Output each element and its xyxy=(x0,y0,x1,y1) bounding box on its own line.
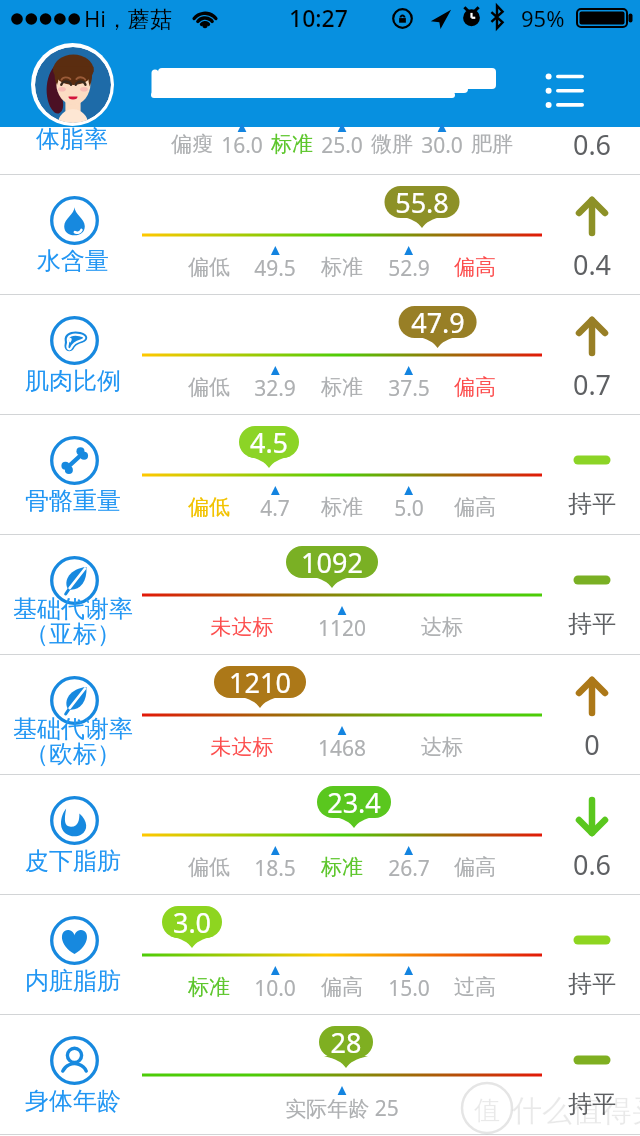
staticText: 4.7 xyxy=(175,494,375,523)
staticText: 10:27 xyxy=(289,2,348,33)
staticText: 15.0 xyxy=(309,974,509,1003)
staticText: 偏高 xyxy=(375,254,575,280)
staticText: 实际年龄 25 xyxy=(242,1094,442,1123)
staticText: 基础代谢率 xyxy=(0,714,173,744)
button[interactable]: 体脂率 xyxy=(0,127,640,175)
staticText: 标准 xyxy=(242,254,442,280)
button[interactable]: Menu xyxy=(532,56,596,116)
button[interactable]: 骨骼重量 xyxy=(0,415,640,535)
staticText: 5.0 xyxy=(309,494,509,523)
staticText: Hi，蘑菇 xyxy=(84,3,172,33)
button[interactable]: 基础代谢率 xyxy=(0,655,640,775)
button[interactable]: 水含量 xyxy=(0,175,640,295)
staticText: 微胖 xyxy=(292,131,492,157)
staticText: 1210 xyxy=(160,664,360,701)
staticText: 52.9 xyxy=(309,254,509,283)
staticText: 25.0 xyxy=(242,131,442,160)
staticText: 骨骼重量 xyxy=(0,486,173,516)
staticText: 23.4 xyxy=(254,784,454,821)
staticText: 肌肉比例 xyxy=(0,366,173,396)
staticText: 49.5 xyxy=(175,254,375,283)
staticText: 偏高 xyxy=(375,854,575,880)
staticText: 0.7 xyxy=(492,366,640,403)
staticText: （欧标） xyxy=(0,739,173,769)
staticText: 55.8 xyxy=(322,184,522,221)
button[interactable]: 内脏脂肪 xyxy=(0,895,640,1015)
staticText: 过高 xyxy=(375,974,575,1000)
staticText: 47.9 xyxy=(338,304,538,341)
staticText: 偏低 xyxy=(109,374,309,400)
button[interactable]: 身体年龄 xyxy=(0,1015,640,1135)
staticText: 标准 xyxy=(192,131,392,157)
staticText: 30.0 xyxy=(342,131,542,160)
staticText: 持平 xyxy=(492,969,640,999)
staticText: 37.5 xyxy=(309,374,509,403)
staticText: 标准 xyxy=(109,974,309,1000)
staticText: 达标 xyxy=(342,614,542,640)
staticText: 28 xyxy=(246,1024,446,1061)
staticText: 3.0 xyxy=(92,904,292,941)
staticText: 持平 xyxy=(492,489,640,519)
staticText: 偏低 xyxy=(109,494,309,520)
staticText: 偏低 xyxy=(109,854,309,880)
staticText: 偏瘦 xyxy=(92,131,292,157)
button[interactable]: 皮下脂肪 xyxy=(0,775,640,895)
staticText: 基础代谢率 xyxy=(0,594,173,624)
staticText: 水含量 xyxy=(0,246,173,276)
staticText: 标准 xyxy=(242,374,442,400)
staticText: 偏低 xyxy=(109,254,309,280)
staticText: 持平 xyxy=(492,1089,640,1119)
staticText: 标准 xyxy=(242,494,442,520)
staticText: 0.4 xyxy=(492,246,640,283)
staticText: 0 xyxy=(492,726,640,763)
staticText: 95% xyxy=(521,3,565,33)
staticText: 0.6 xyxy=(492,846,640,883)
staticText: 1468 xyxy=(242,734,442,763)
staticText: 值 xyxy=(474,1094,500,1127)
staticText: 32.9 xyxy=(175,374,375,403)
staticText: 未达标 xyxy=(142,614,342,640)
staticText: 偏高 xyxy=(242,974,442,1000)
staticText: 0.6 xyxy=(492,126,640,163)
staticText: 1092 xyxy=(232,544,432,581)
staticText: 1120 xyxy=(242,614,442,643)
staticText: 什么值得买 xyxy=(512,1092,640,1130)
staticText: 持平 xyxy=(492,609,640,639)
staticText: 偏高 xyxy=(375,374,575,400)
staticText: 标准 xyxy=(242,854,442,880)
staticText: 26.7 xyxy=(309,854,509,883)
button[interactable]: Profile photo xyxy=(31,43,114,126)
staticText: 肥胖 xyxy=(392,131,592,157)
staticText: 4.5 xyxy=(169,424,369,461)
staticText: 10.0 xyxy=(175,974,375,1003)
staticText: 16.0 xyxy=(142,131,342,160)
staticText: （亚标） xyxy=(0,619,173,649)
staticText: 内脏脂肪 xyxy=(0,966,173,996)
button[interactable]: 基础代谢率 xyxy=(0,535,640,655)
staticText: 达标 xyxy=(342,734,542,760)
staticText: 偏高 xyxy=(375,494,575,520)
staticText: 18.5 xyxy=(175,854,375,883)
button[interactable]: 肌肉比例 xyxy=(0,295,640,415)
staticText: 身体年龄 xyxy=(0,1086,173,1116)
staticText: 未达标 xyxy=(142,734,342,760)
staticText: 体脂率 xyxy=(0,124,172,154)
staticText: 皮下脂肪 xyxy=(0,846,173,876)
